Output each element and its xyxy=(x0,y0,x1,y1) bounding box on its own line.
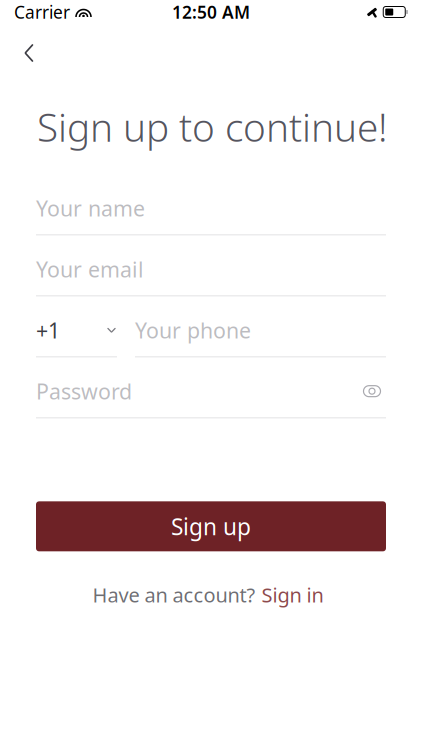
staticText: Have an account? xyxy=(92,581,255,608)
staticText: Sign up xyxy=(171,511,251,541)
button[interactable]: Sign in xyxy=(255,577,329,612)
staticText: Sign up to continue! xyxy=(37,101,388,152)
button[interactable]: Back xyxy=(0,32,52,74)
staticText: Sign in xyxy=(261,581,323,608)
staticText: Carrier xyxy=(14,0,70,23)
button[interactable]: Show password xyxy=(358,384,386,398)
staticText: Your name xyxy=(36,194,145,222)
staticText: 12:50 AM xyxy=(172,0,250,23)
button[interactable]: Country code, plus 1 xyxy=(36,296,117,357)
staticText: +1 xyxy=(36,316,60,344)
staticText: Your email xyxy=(36,255,144,283)
button[interactable]: Sign up xyxy=(36,501,386,551)
staticText: Password xyxy=(36,377,132,405)
staticText: Your phone xyxy=(135,316,251,344)
